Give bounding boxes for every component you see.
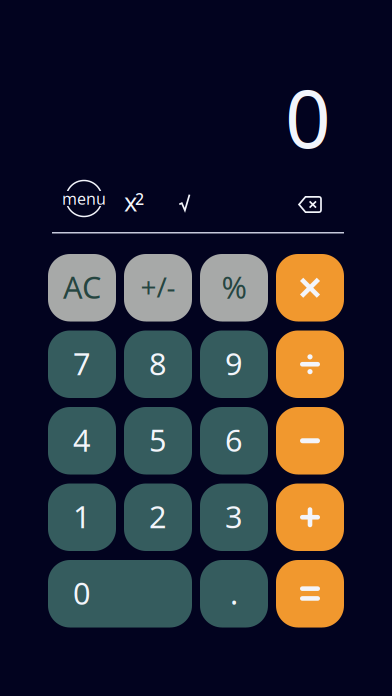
staticText: 9	[225, 343, 243, 384]
button[interactable]: 9	[200, 330, 268, 398]
staticText: 6	[225, 419, 243, 460]
button[interactable]: Divide	[276, 330, 344, 398]
button[interactable]: 6	[200, 407, 268, 474]
button[interactable]: 7	[48, 330, 116, 398]
button[interactable]: Plus	[276, 483, 344, 551]
button[interactable]: Equals	[276, 560, 344, 627]
button[interactable]: menu	[60, 176, 108, 220]
button[interactable]: 4	[48, 407, 116, 474]
staticText: AC	[63, 266, 101, 307]
button[interactable]: Minus	[276, 407, 344, 474]
staticText: 8	[149, 343, 167, 384]
staticText: 3	[225, 496, 243, 537]
button[interactable]: AC	[48, 254, 116, 321]
button[interactable]: +/-	[124, 254, 192, 321]
staticText: menu	[62, 188, 106, 209]
staticText: 0	[73, 572, 91, 613]
staticText: %	[221, 266, 246, 307]
button[interactable]: 1	[48, 483, 116, 551]
button[interactable]: 2	[124, 483, 192, 551]
button[interactable]: 0	[48, 560, 192, 627]
staticText: +/-	[140, 268, 175, 305]
button[interactable]: Backspace	[288, 182, 332, 226]
staticText: 2	[135, 188, 144, 209]
staticText: 4	[73, 419, 91, 460]
button[interactable]: %	[200, 254, 268, 321]
button[interactable]: Square root	[168, 180, 200, 224]
button[interactable]: 3	[200, 483, 268, 551]
staticText: 7	[73, 343, 91, 384]
button[interactable]: 5	[124, 407, 192, 474]
staticText: 1	[73, 496, 91, 537]
staticText: 2	[149, 496, 167, 537]
staticText: 0	[285, 64, 331, 170]
button[interactable]: .	[200, 560, 268, 627]
button[interactable]: 8	[124, 330, 192, 398]
staticText: 5	[149, 419, 167, 460]
staticText: .	[230, 572, 238, 613]
button[interactable]: Multiply	[276, 254, 344, 321]
staticText: x	[124, 185, 137, 218]
button[interactable]: x	[120, 183, 154, 227]
